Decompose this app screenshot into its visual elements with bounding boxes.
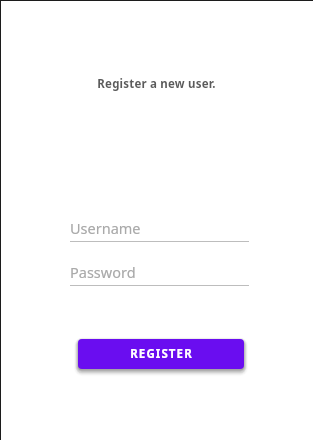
button[interactable]: REGISTER <box>78 339 244 369</box>
staticText: REGISTER <box>130 346 193 362</box>
button[interactable]: Username <box>70 218 249 242</box>
button[interactable]: Password <box>70 262 249 286</box>
staticText: Password <box>70 262 136 282</box>
staticText: Username <box>70 218 141 238</box>
staticText: Register a new user. <box>0 76 313 92</box>
